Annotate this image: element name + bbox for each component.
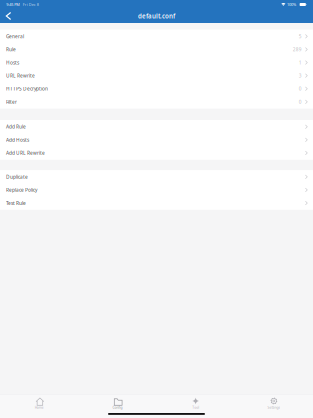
staticText: Test Rule [6,200,26,206]
staticText: Fri Dec 8 [23,2,39,7]
button[interactable]: Back [0,9,17,23]
button[interactable]: Home [0,398,78,409]
staticText: 289 [293,46,302,53]
button[interactable]: Settings [235,398,313,409]
button[interactable]: Test Rule [0,196,313,210]
staticText: General [6,33,24,40]
staticText: Settings [267,405,280,410]
staticText: 5 [299,33,302,40]
staticText: Hosts [6,59,19,66]
button[interactable]: General [0,30,313,43]
staticText: 0 [299,99,302,105]
button[interactable]: Add Rule [0,120,313,133]
staticText: URL Rewrite [6,72,35,79]
staticText: Rule [6,46,16,53]
button[interactable]: Tool [156,398,235,409]
staticText: Config [112,405,122,410]
staticText: default.conf [138,12,175,20]
staticText: 9:45 PM [6,2,20,7]
button[interactable]: HTTPS Decryption [0,82,313,95]
staticText: HTTPS Decryption [6,85,48,92]
button[interactable]: Add URL Rewrite [0,146,313,159]
button[interactable]: Replace Policy [0,183,313,196]
staticText: Add URL Rewrite [6,150,45,156]
staticText: Add Rule [6,123,26,130]
staticText: 0 [299,85,302,92]
staticText: Home [35,405,44,410]
staticText: 100% [287,2,296,7]
staticText: 3 [299,72,302,79]
staticText: Tool [192,405,199,410]
staticText: Filter [6,99,17,105]
button[interactable]: Filter [0,95,313,108]
staticText: Replace Policy [6,187,37,193]
button[interactable]: Hosts [0,56,313,69]
button[interactable]: Rule [0,43,313,56]
button[interactable]: Add Hosts [0,133,313,146]
button[interactable]: Duplicate [0,170,313,183]
button[interactable]: Config [78,398,156,409]
button[interactable]: URL Rewrite [0,69,313,82]
staticText: 1 [299,59,302,66]
staticText: Add Hosts [6,137,29,143]
staticText: Duplicate [6,174,28,180]
